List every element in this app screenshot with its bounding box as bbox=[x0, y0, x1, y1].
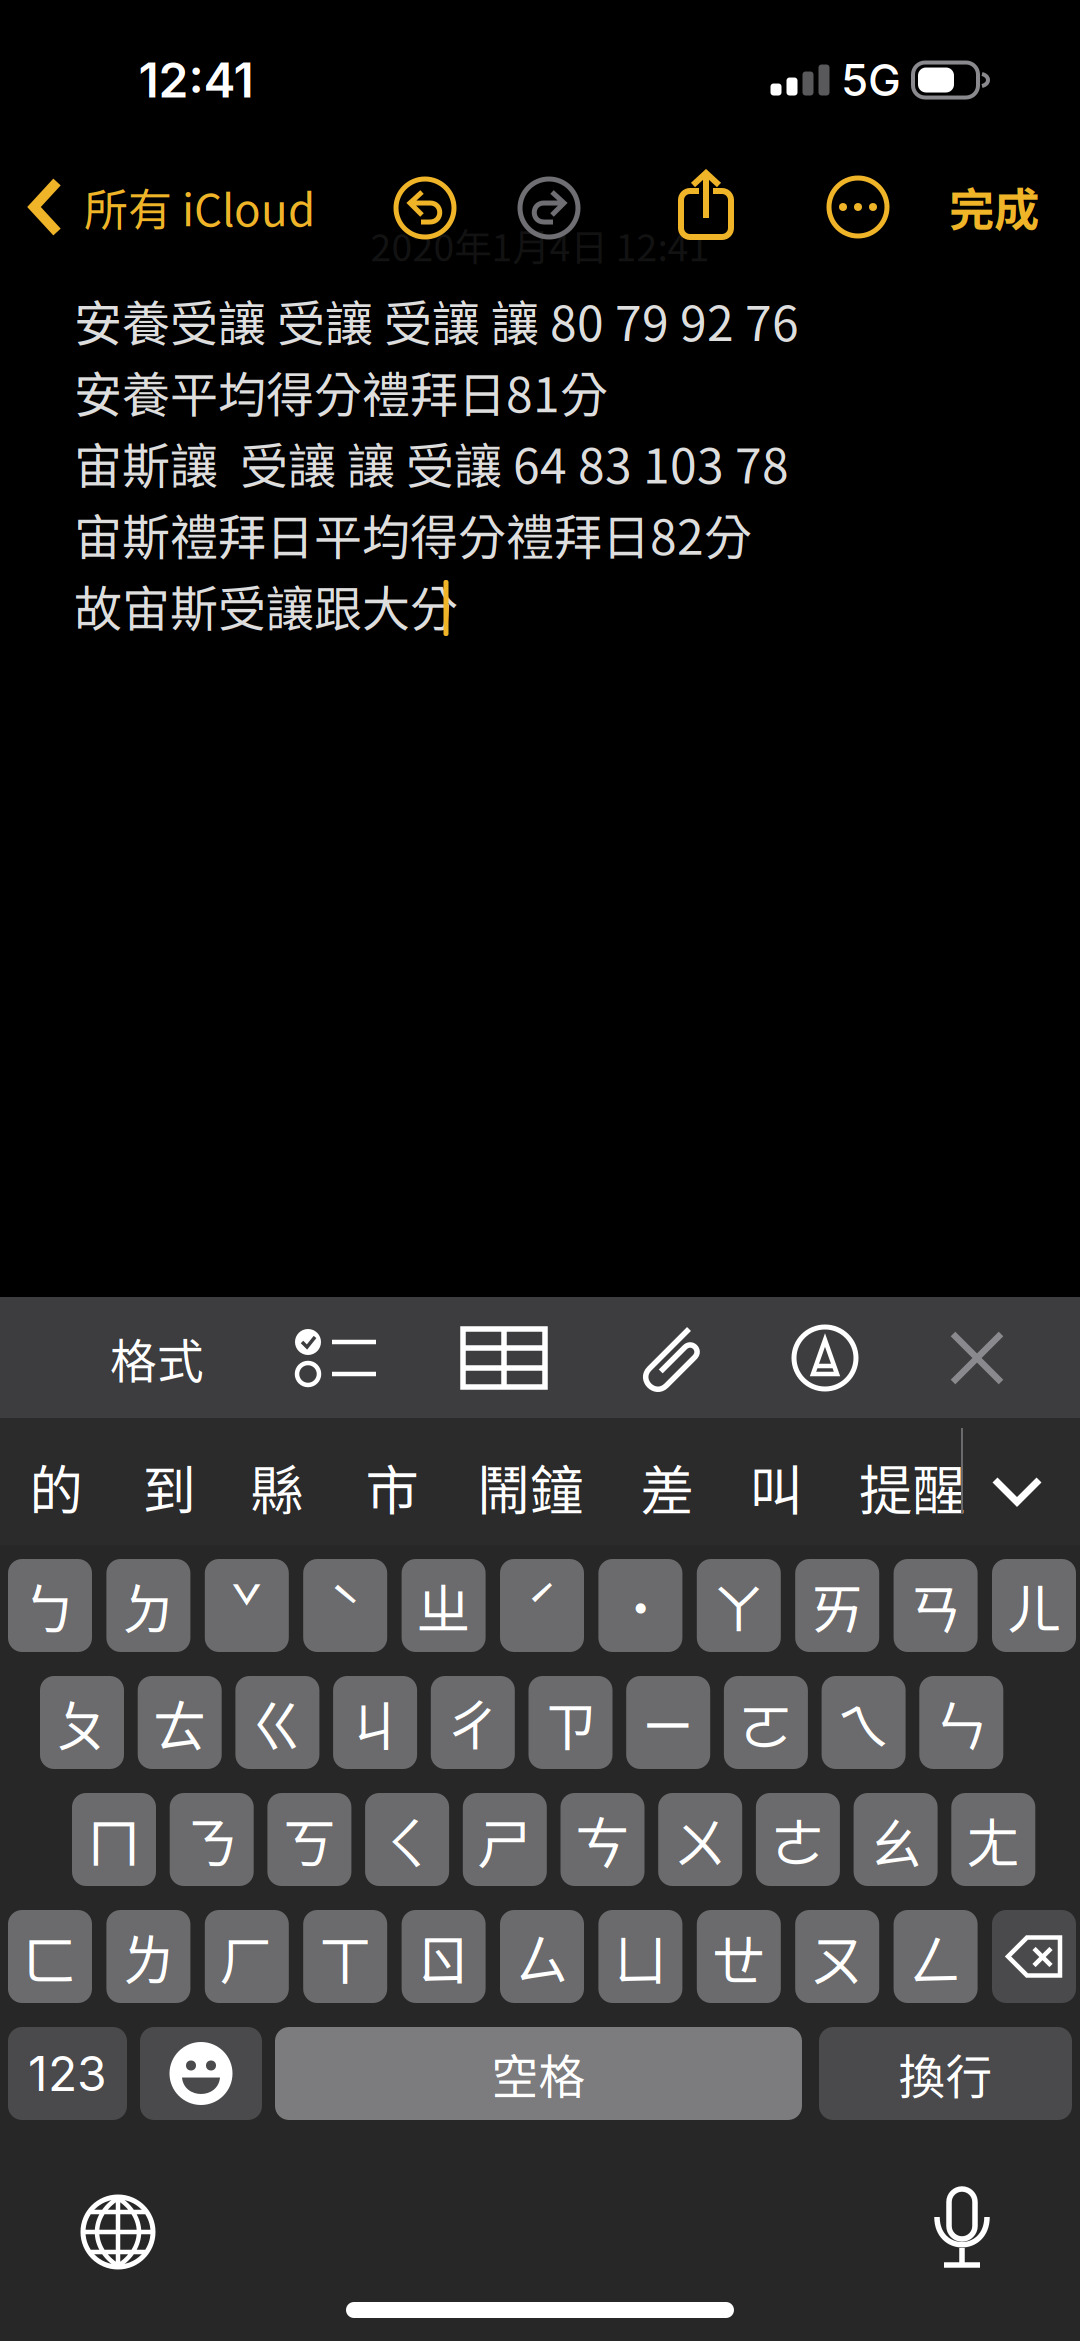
staticText: ㄖ bbox=[416, 1917, 471, 1996]
button[interactable]: 提醒 bbox=[837, 1423, 987, 1550]
button[interactable]: ㄟ bbox=[822, 1676, 906, 1769]
button[interactable]: ㄩ bbox=[598, 1910, 682, 2003]
button[interactable]: ㄨ bbox=[658, 1793, 742, 1886]
staticText: 提醒 bbox=[859, 1448, 965, 1526]
button[interactable]: Checklist bbox=[294, 1329, 378, 1387]
button[interactable]: ㄇ bbox=[72, 1793, 156, 1886]
button[interactable]: More candidates bbox=[991, 1475, 1043, 1507]
staticText: ㄒ bbox=[318, 1917, 373, 1996]
button[interactable]: ㄖ bbox=[402, 1910, 486, 2003]
button[interactable]: Table bbox=[460, 1326, 548, 1390]
button[interactable]: Share bbox=[678, 172, 734, 240]
button[interactable]: ㄒ bbox=[303, 1910, 387, 2003]
button[interactable]: 差 bbox=[618, 1423, 715, 1550]
button[interactable]: 縣 bbox=[228, 1423, 325, 1550]
button[interactable]: 空格 bbox=[275, 2027, 802, 2120]
button[interactable]: 叫 bbox=[727, 1423, 824, 1550]
button[interactable]: Dictation bbox=[934, 2188, 990, 2272]
button[interactable]: ˇ bbox=[205, 1559, 289, 1652]
button[interactable]: ㄦ bbox=[992, 1559, 1076, 1652]
staticText: ㄣ bbox=[934, 1683, 989, 1762]
button[interactable]: ㄠ bbox=[854, 1793, 938, 1886]
button[interactable]: ㄔ bbox=[431, 1676, 515, 1769]
staticText: ˙ bbox=[627, 1566, 654, 1645]
button[interactable]: More options bbox=[829, 178, 887, 236]
staticText: 的 bbox=[29, 1448, 82, 1526]
button[interactable]: ㄕ bbox=[463, 1793, 547, 1886]
staticText: 換行 bbox=[898, 2040, 992, 2107]
button[interactable]: Close toolbar bbox=[949, 1330, 1005, 1386]
button[interactable]: 鬧鐘 bbox=[455, 1423, 605, 1550]
button[interactable]: Attach file bbox=[637, 1321, 703, 1395]
button[interactable]: ㄣ bbox=[919, 1676, 1003, 1769]
button[interactable]: ˊ bbox=[500, 1559, 584, 1652]
button[interactable]: ㄑ bbox=[365, 1793, 449, 1886]
button[interactable]: ㄥ bbox=[894, 1910, 978, 2003]
staticText: ˊ bbox=[525, 1566, 558, 1645]
button[interactable]: ㄓ bbox=[402, 1559, 486, 1652]
staticText: ㄠ bbox=[868, 1800, 923, 1879]
button[interactable]: 格式 bbox=[82, 1297, 232, 1418]
button[interactable]: ㄙ bbox=[500, 1910, 584, 2003]
button[interactable]: ㄡ bbox=[795, 1910, 879, 2003]
staticText: 宙斯禮拜日平均得分禮拜日82分 bbox=[74, 499, 752, 569]
staticText: 市 bbox=[365, 1448, 418, 1526]
button[interactable]: Markup bbox=[792, 1325, 858, 1391]
button[interactable]: Delete bbox=[992, 1910, 1076, 2003]
staticText: ˋ bbox=[329, 1566, 362, 1645]
button[interactable]: ㄋ bbox=[170, 1793, 254, 1886]
staticText: 安養受讓 受讓 受讓 讓 80 79 92 76 bbox=[74, 285, 799, 355]
button[interactable]: ㄅ bbox=[8, 1559, 92, 1652]
button[interactable]: ㄏ bbox=[205, 1910, 289, 2003]
button[interactable]: ㄈ bbox=[8, 1910, 92, 2003]
button[interactable]: ㄆ bbox=[40, 1676, 124, 1769]
button[interactable]: 的 bbox=[7, 1423, 104, 1550]
staticText: 鬧鐘 bbox=[477, 1448, 583, 1526]
button[interactable]: ㄝ bbox=[697, 1910, 781, 2003]
button[interactable]: ㄊ bbox=[138, 1676, 222, 1769]
button[interactable]: ㄜ bbox=[756, 1793, 840, 1886]
staticText: 到 bbox=[142, 1448, 195, 1526]
button[interactable]: 所有 iCloud bbox=[0, 157, 460, 257]
button[interactable]: 到 bbox=[120, 1423, 217, 1550]
button[interactable]: ˙ bbox=[598, 1559, 682, 1652]
button[interactable]: 市 bbox=[343, 1423, 440, 1550]
staticText: ㄆ bbox=[54, 1683, 109, 1762]
button[interactable]: ㄎ bbox=[267, 1793, 351, 1886]
button[interactable]: ㄧ bbox=[626, 1676, 710, 1769]
staticText: 空格 bbox=[491, 2040, 585, 2107]
button[interactable]: 完成 bbox=[924, 157, 1064, 257]
button[interactable]: ㄞ bbox=[795, 1559, 879, 1652]
button[interactable]: ㄐ bbox=[333, 1676, 417, 1769]
button[interactable]: ㄌ bbox=[106, 1910, 190, 2003]
button[interactable]: ㄛ bbox=[724, 1676, 808, 1769]
button[interactable]: ㄢ bbox=[894, 1559, 978, 1652]
button[interactable]: Redo bbox=[520, 179, 578, 237]
staticText: ㄓ bbox=[416, 1566, 471, 1645]
button[interactable]: Switch keyboard bbox=[81, 2195, 155, 2269]
staticText: ㄍ bbox=[250, 1683, 305, 1762]
button[interactable]: ㄘ bbox=[560, 1793, 644, 1886]
button[interactable]: Emoji bbox=[140, 2027, 262, 2120]
button[interactable]: ˋ bbox=[303, 1559, 387, 1652]
button[interactable]: ㄉ bbox=[106, 1559, 190, 1652]
staticText: ㄝ bbox=[711, 1917, 766, 1996]
button[interactable]: 換行 bbox=[819, 2027, 1072, 2120]
button[interactable]: ㄍ bbox=[235, 1676, 319, 1769]
staticText: 所有 iCloud bbox=[84, 175, 315, 239]
staticText: ㄔ bbox=[445, 1683, 500, 1762]
staticText: ㄨ bbox=[673, 1800, 728, 1879]
button[interactable]: ㄤ bbox=[951, 1793, 1035, 1886]
staticText: ㄈ bbox=[22, 1917, 77, 1996]
staticText: ㄊ bbox=[152, 1683, 207, 1762]
button[interactable]: 123 bbox=[8, 2027, 127, 2120]
staticText: 完成 bbox=[949, 174, 1039, 240]
button[interactable]: Undo bbox=[396, 179, 454, 237]
button[interactable]: ㄚ bbox=[697, 1559, 781, 1652]
staticText: ㄜ bbox=[770, 1800, 825, 1879]
staticText: ㄋ bbox=[184, 1800, 239, 1879]
button[interactable]: ㄗ bbox=[528, 1676, 612, 1769]
staticText: ㄩ bbox=[613, 1917, 668, 1996]
staticText: 叫 bbox=[749, 1448, 802, 1526]
staticText: 安養平均得分禮拜日81分 bbox=[74, 356, 608, 426]
